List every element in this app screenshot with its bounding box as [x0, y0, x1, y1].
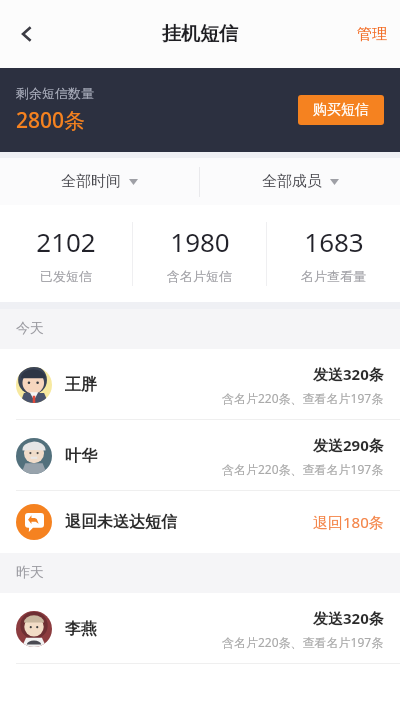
staticText: 名片查看量 [301, 268, 366, 284]
staticText: 1980 [170, 224, 230, 259]
staticText: 已发短信 [40, 268, 92, 284]
staticText: 2102 [36, 224, 96, 259]
staticText: 昨天 [16, 564, 44, 582]
button[interactable]: 全部时间 [0, 158, 199, 205]
staticText: 王胖 [65, 375, 97, 395]
staticText: 今天 [16, 320, 44, 338]
staticText: 管理 [357, 25, 387, 44]
button[interactable]: 李燕 [0, 593, 400, 664]
button[interactable]: 叶华 [0, 420, 400, 491]
button[interactable]: 1683 [267, 205, 400, 302]
staticText: 含名片220条、查看名片197条 [222, 461, 384, 477]
staticText: 含名片220条、查看名片197条 [222, 634, 384, 650]
staticText: 退回未送达短信 [65, 512, 177, 532]
staticText: 全部时间 [61, 172, 121, 191]
staticText: 退回180条 [313, 512, 384, 532]
button[interactable]: 2102 [0, 205, 132, 302]
button[interactable]: 1980 [133, 205, 266, 302]
staticText: 1683 [304, 224, 364, 259]
button[interactable]: 全部成员 [200, 158, 400, 205]
staticText: 发送320条 [313, 364, 384, 384]
staticText: 发送320条 [313, 608, 384, 628]
staticText: 购买短信 [313, 101, 369, 119]
staticText: 挂机短信 [162, 22, 238, 46]
button[interactable]: 王胖 [0, 349, 400, 420]
staticText: 剩余短信数量 [16, 85, 94, 101]
staticText: 全部成员 [262, 172, 322, 191]
staticText: 2800条 [16, 106, 86, 135]
button[interactable]: 管理 [344, 13, 400, 56]
staticText: 发送290条 [313, 435, 384, 455]
staticText: 含名片220条、查看名片197条 [222, 390, 384, 406]
staticText: 含名片短信 [167, 268, 232, 284]
button[interactable]: Back [4, 11, 50, 57]
staticText: 叶华 [65, 446, 97, 466]
button[interactable]: 购买短信 [298, 95, 384, 125]
staticText: 李燕 [65, 619, 97, 639]
button[interactable]: 退回未送达短信 [0, 491, 400, 553]
